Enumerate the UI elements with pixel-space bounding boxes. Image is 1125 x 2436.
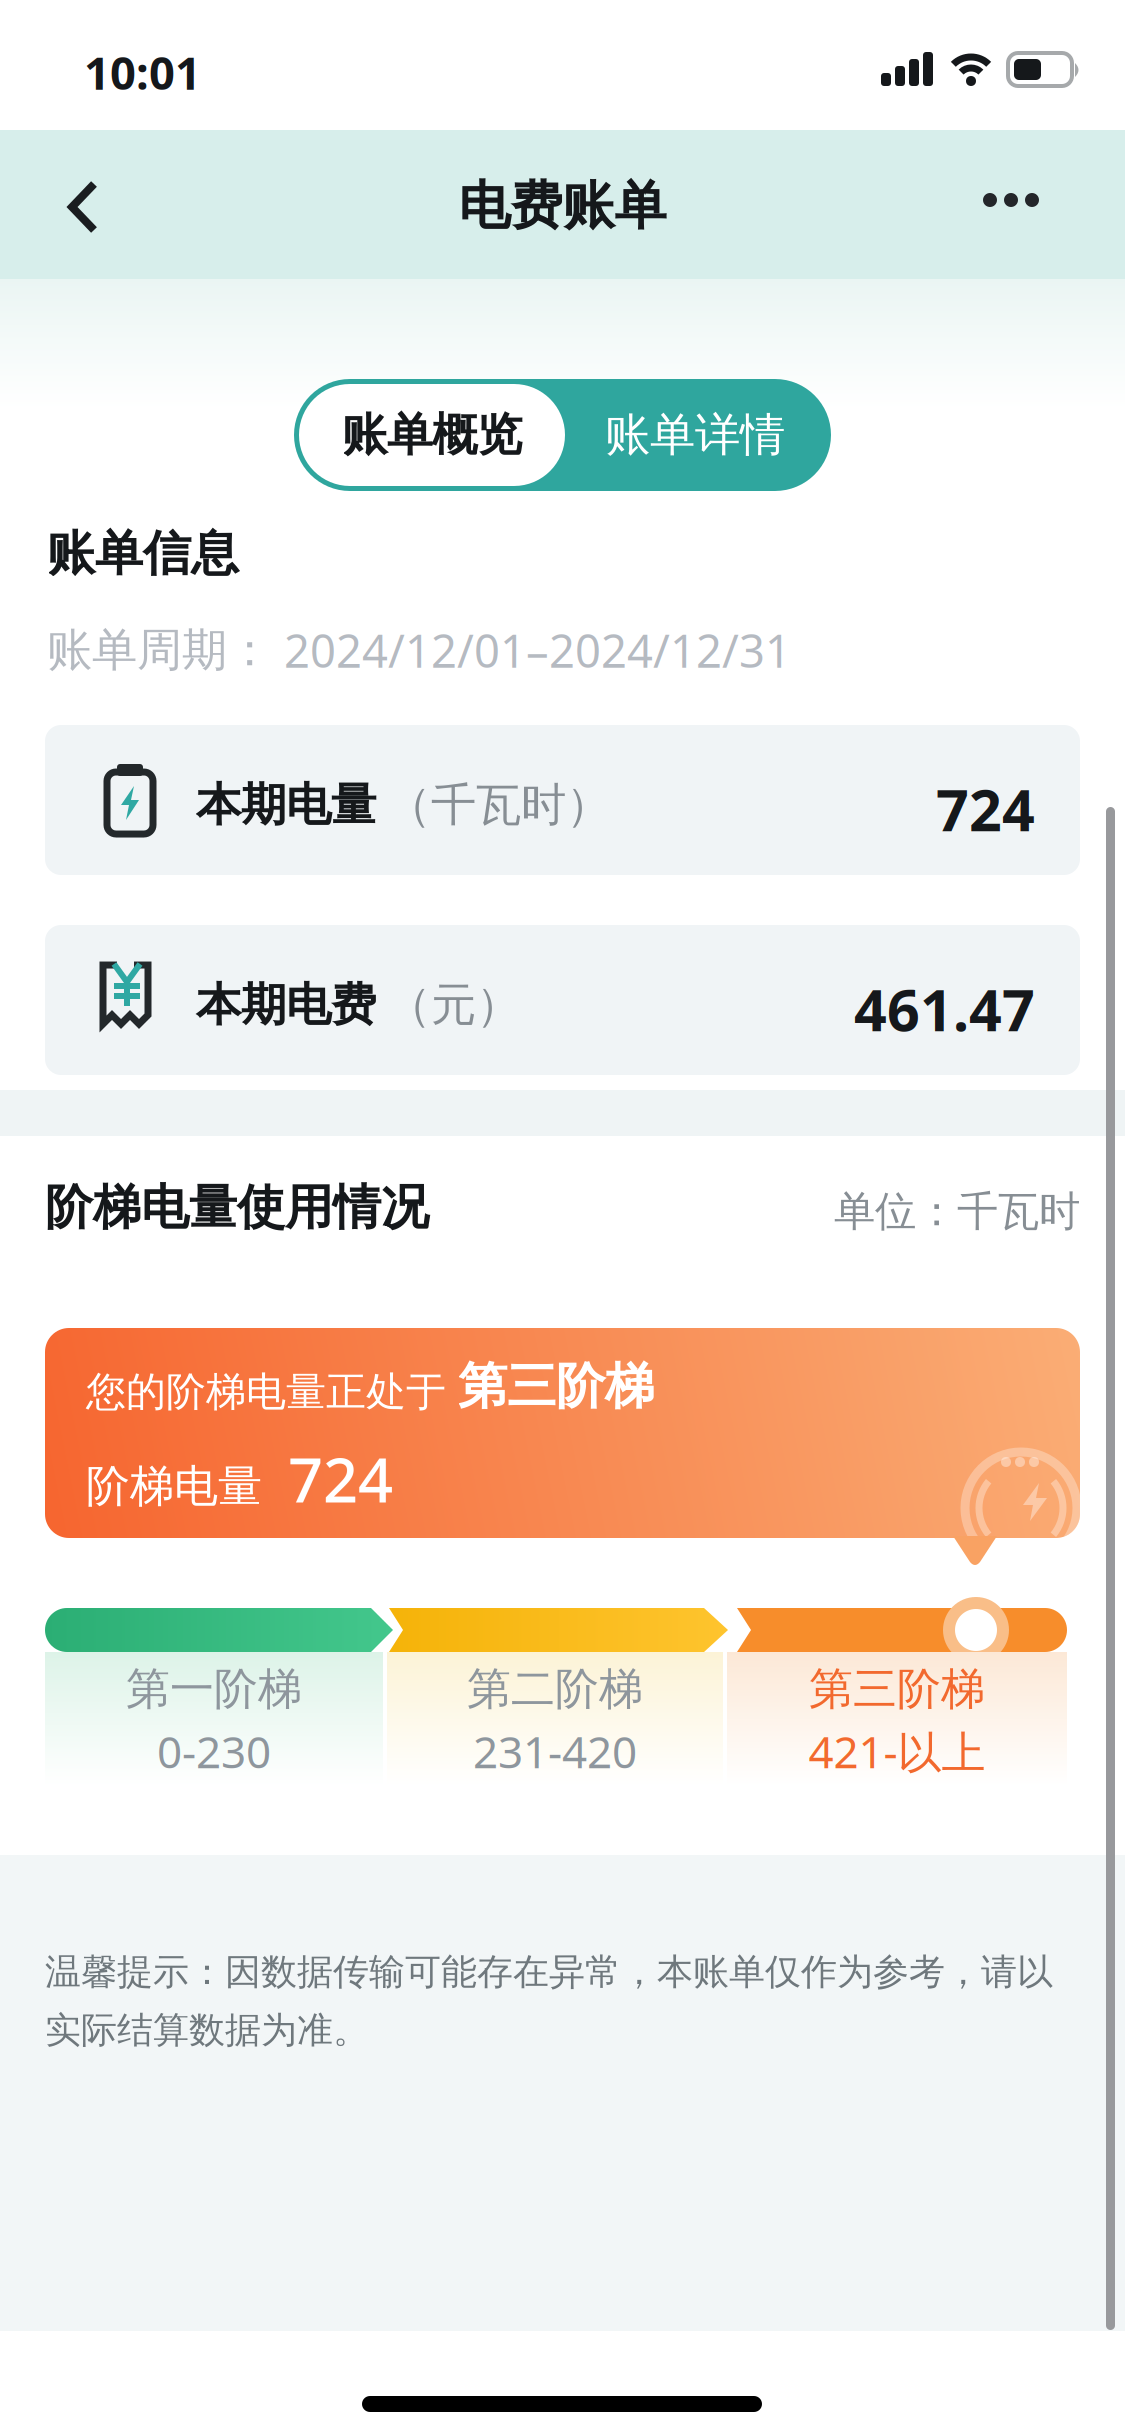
staticText: 温馨提示：因数据传输可能存在异常，本账单仅作为参考，请以 (45, 1950, 1053, 1994)
staticText: 231-420 (473, 1722, 637, 1780)
staticText: 账单详情 (605, 407, 785, 463)
staticText: 账单周期： (47, 622, 272, 678)
staticText: 10:01 (84, 42, 201, 102)
button[interactable]: Back (50, 172, 120, 242)
staticText: 账单概览 (342, 407, 522, 463)
staticText: 724 (936, 771, 1035, 847)
staticText: 阶梯电量使用情况 (45, 1178, 429, 1237)
staticText: 第三阶梯 (809, 1662, 985, 1716)
staticText: （千瓦时） (386, 777, 611, 833)
staticText: 单位：千瓦时 (834, 1186, 1080, 1237)
staticText: 724 (288, 1438, 393, 1519)
staticText: 账单信息 (47, 524, 239, 583)
staticText: 您的阶梯电量正处于 (86, 1367, 446, 1417)
staticText: 第一阶梯 (126, 1662, 302, 1716)
staticText: 电费账单 (458, 174, 666, 238)
button[interactable]: 账单概览 (299, 384, 565, 486)
staticText: 2024/12/01–2024/12/31 (272, 620, 791, 680)
staticText: 0-230 (157, 1722, 271, 1780)
staticText: 本期电量 (196, 777, 376, 833)
staticText: 本期电费 (196, 977, 376, 1033)
staticText: 421-以上 (808, 1722, 985, 1780)
button[interactable]: 账单详情 (570, 384, 820, 486)
staticText: 461.47 (854, 971, 1035, 1047)
staticText: （元） (386, 977, 521, 1033)
button[interactable]: More (956, 168, 1066, 232)
staticText: 实际结算数据为准。 (45, 2008, 369, 2052)
staticText: 阶梯电量 (86, 1459, 262, 1513)
staticText: 第二阶梯 (467, 1662, 643, 1716)
staticText: 第三阶梯 (458, 1356, 654, 1417)
